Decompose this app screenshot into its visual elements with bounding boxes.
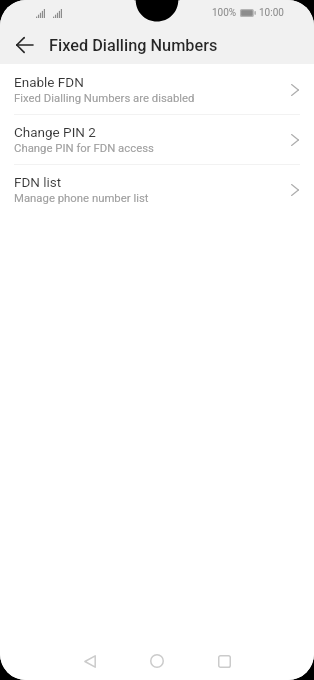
button[interactable]: Home	[137, 641, 177, 680]
staticText: Change PIN for FDN access	[14, 141, 154, 154]
staticText: Fixed Dialling Numbers are disabled	[14, 91, 195, 104]
staticText: Manage phone number list	[14, 191, 149, 204]
button[interactable]: Recents	[204, 641, 244, 680]
staticText: Enable FDN	[14, 74, 84, 90]
staticText: Fixed Dialling Numbers	[49, 36, 218, 55]
staticText: FDN list	[14, 174, 62, 190]
button[interactable]: Enable FDN	[0, 64, 314, 114]
button[interactable]: Back	[6, 27, 42, 63]
staticText: Change PIN 2	[14, 124, 96, 140]
button[interactable]: Change PIN 2	[0, 114, 314, 164]
staticText: 10:00	[259, 7, 284, 19]
staticText: 100%	[212, 7, 237, 19]
button[interactable]: FDN list	[0, 164, 314, 214]
button[interactable]: Back	[70, 641, 110, 680]
